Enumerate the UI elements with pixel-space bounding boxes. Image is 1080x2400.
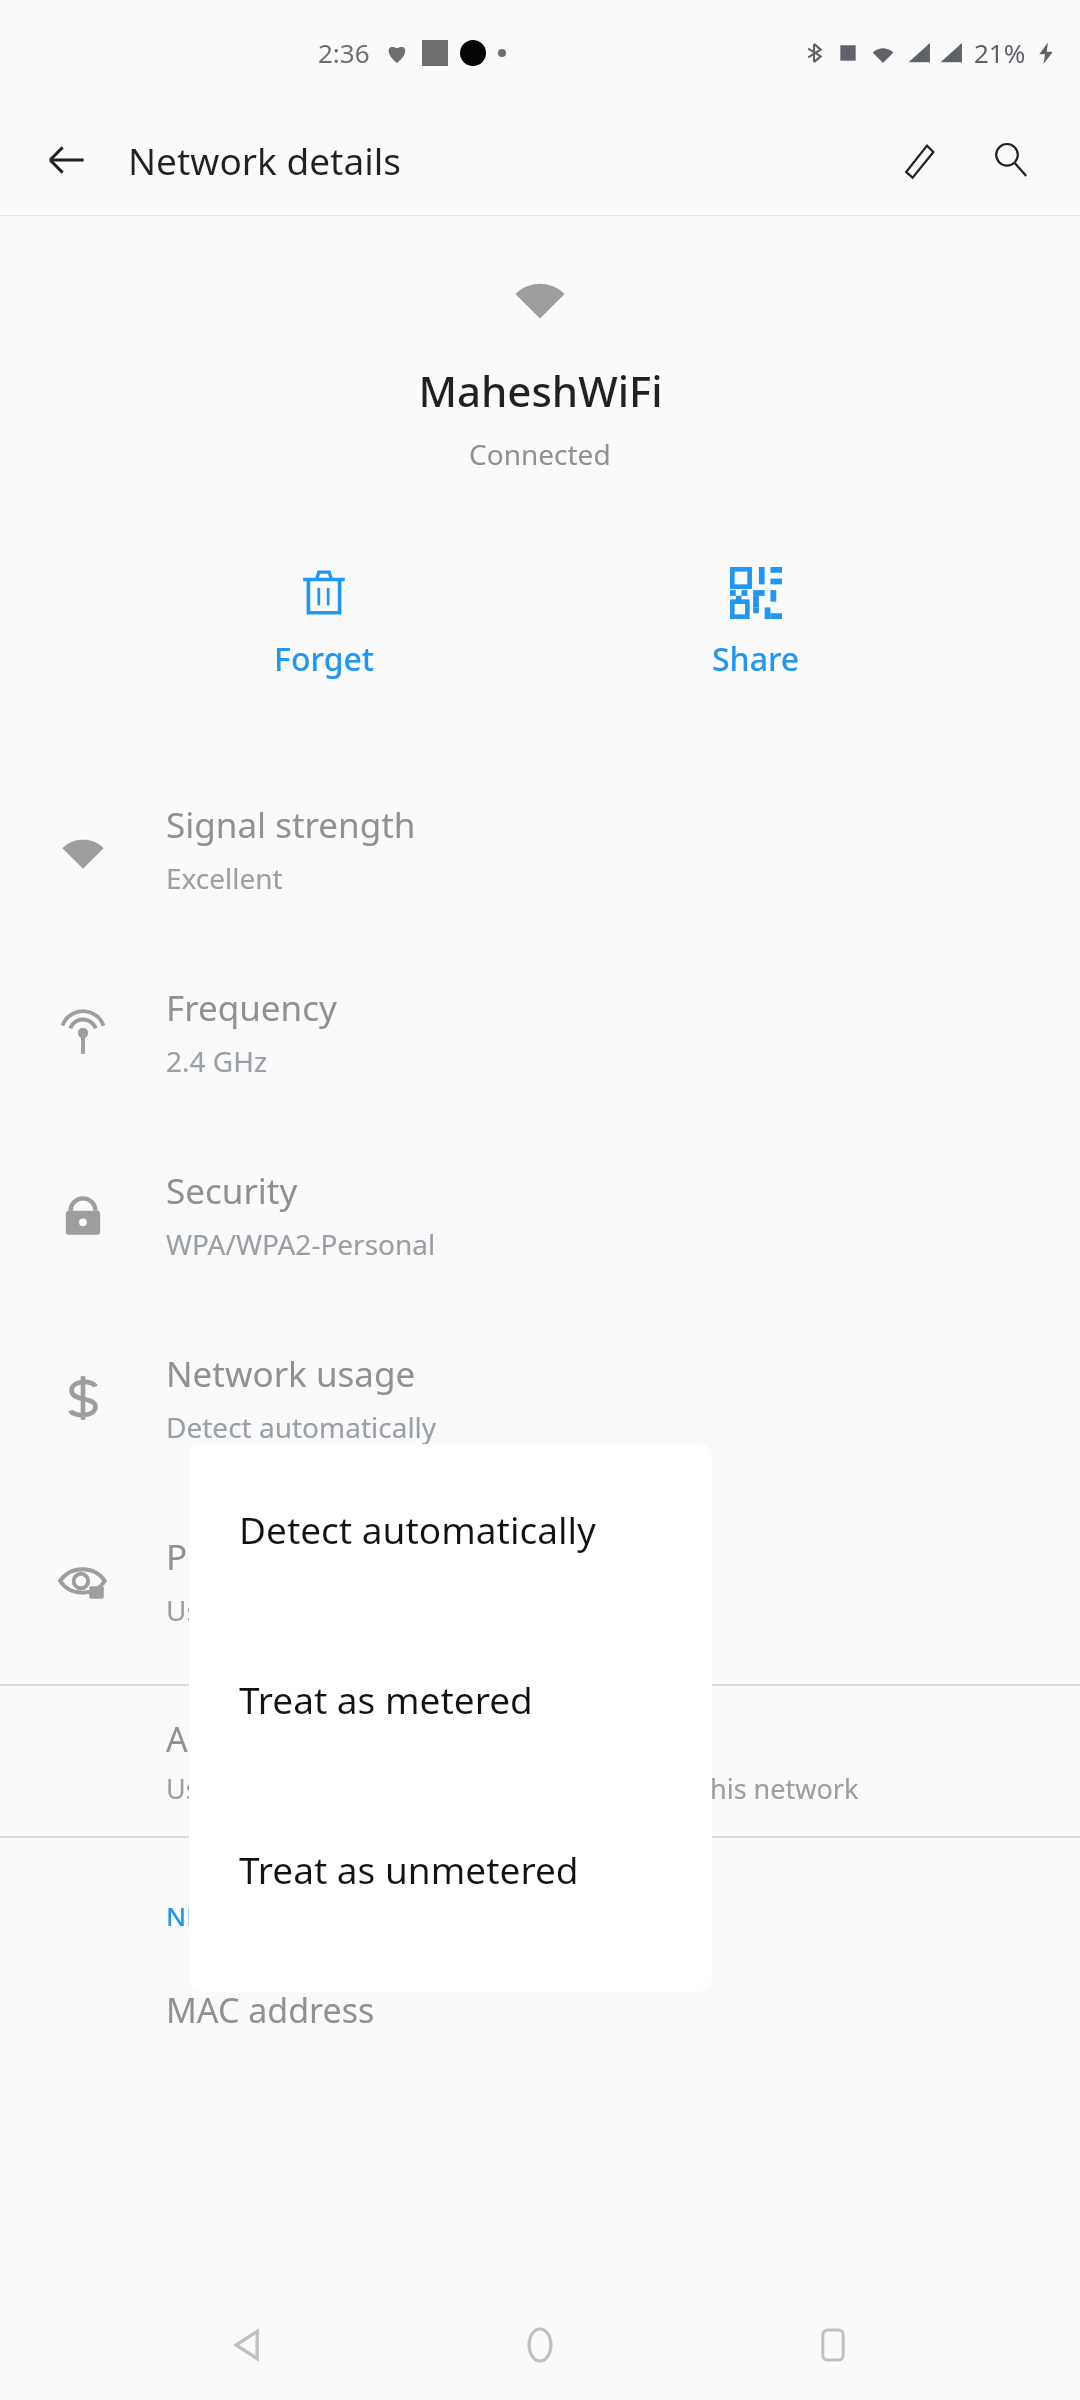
staticText: Network details [128, 135, 402, 185]
button[interactable]: Back [201, 2299, 293, 2391]
button[interactable]: Frequency [0, 940, 1080, 1123]
button[interactable]: Treat as unmetered [189, 1784, 712, 1954]
button[interactable]: Security [0, 1123, 1080, 1306]
staticText: Share [712, 637, 800, 681]
button[interactable]: Signal strength [0, 757, 1080, 940]
button[interactable]: Treat as metered [189, 1614, 712, 1784]
staticText: Signal strength [166, 801, 416, 849]
staticText: 2.4 GHz [166, 1042, 268, 1080]
button[interactable]: Recents [787, 2299, 879, 2391]
staticText: Treat as unmetered [239, 1844, 579, 1894]
button[interactable]: Network usage [0, 1306, 1080, 1489]
button[interactable]: Share [540, 559, 972, 689]
staticText: Security [166, 1167, 298, 1215]
staticText: Frequency [166, 984, 337, 1032]
staticText: 2:36 [318, 35, 370, 70]
button[interactable]: Home [494, 2299, 586, 2391]
staticText: Connected [469, 435, 611, 473]
button[interactable]: Forget [108, 559, 540, 689]
staticText: Use randomized MAC [166, 1591, 449, 1629]
staticText: Use mobile data when disconnected from t… [166, 1770, 859, 1807]
staticText: Auto-connect [166, 1716, 380, 1762]
staticText: Treat as metered [239, 1674, 533, 1724]
staticText: Detect automatically [166, 1408, 437, 1446]
staticText: WPA/WPA2-Personal [166, 1225, 436, 1263]
staticText: Detect automatically [239, 1504, 596, 1554]
staticText: Excellent [166, 859, 283, 897]
button[interactable]: Privacy [0, 1489, 1080, 1672]
staticText: MAC address [166, 1987, 375, 2033]
button[interactable]: Back [30, 124, 102, 196]
button[interactable]: Search [972, 121, 1050, 199]
staticText: Privacy [166, 1533, 283, 1581]
button[interactable]: Auto-connect [0, 1686, 1080, 1836]
staticText: 21% [974, 35, 1026, 70]
button[interactable]: Edit [880, 121, 958, 199]
staticText: Forget [274, 637, 375, 681]
staticText: NETWORK DETAILS [166, 1898, 401, 1933]
button[interactable]: Detect automatically [189, 1444, 712, 1614]
staticText: MaheshWiFi [418, 362, 663, 419]
staticText: Network usage [166, 1350, 416, 1398]
